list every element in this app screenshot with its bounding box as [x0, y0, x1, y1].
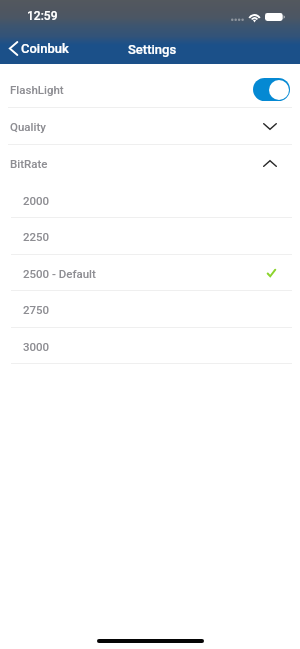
button[interactable]: 2250	[0, 218, 300, 255]
button[interactable]: 3000	[0, 328, 300, 365]
staticText: FlashLight	[10, 83, 64, 96]
staticText: 2750	[23, 303, 50, 316]
button[interactable]: 2000	[0, 182, 300, 219]
button[interactable]: Quality	[0, 108, 300, 145]
button[interactable]: FlashLight	[0, 64, 300, 108]
staticText: 2250	[23, 230, 50, 243]
staticText: 2000	[23, 194, 50, 207]
button[interactable]: Coinbuk	[0, 34, 77, 64]
button[interactable]: BitRate	[0, 145, 300, 182]
staticText: Quality	[10, 120, 46, 133]
staticText: Settings	[128, 42, 177, 57]
staticText: 12:59	[27, 9, 58, 23]
staticText: BitRate	[10, 157, 48, 170]
staticText: 2500 - Default	[23, 267, 96, 280]
staticText: Coinbuk	[21, 41, 69, 56]
button[interactable]: FlashLight switch, on	[253, 78, 290, 101]
button[interactable]: 2750	[0, 291, 300, 328]
button[interactable]: 2500 - Default	[0, 255, 300, 292]
staticText: 3000	[23, 340, 50, 353]
